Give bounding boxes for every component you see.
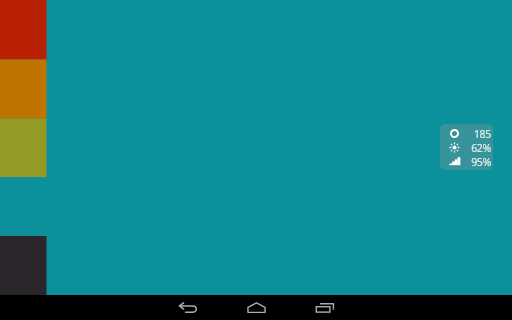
button[interactable]: Dark category <box>0 236 47 295</box>
button[interactable]: Recent apps <box>290 295 358 320</box>
staticText: 185 <box>473 127 491 140</box>
staticText: 95% <box>471 155 491 168</box>
button[interactable]: Status widget <box>440 124 493 170</box>
button[interactable]: Olive category <box>0 119 47 178</box>
button[interactable]: Red category <box>0 0 47 60</box>
staticText: 62% <box>471 141 491 154</box>
button[interactable]: Home <box>222 295 290 320</box>
button[interactable]: Orange category <box>0 60 47 119</box>
button[interactable]: Back <box>154 295 222 320</box>
